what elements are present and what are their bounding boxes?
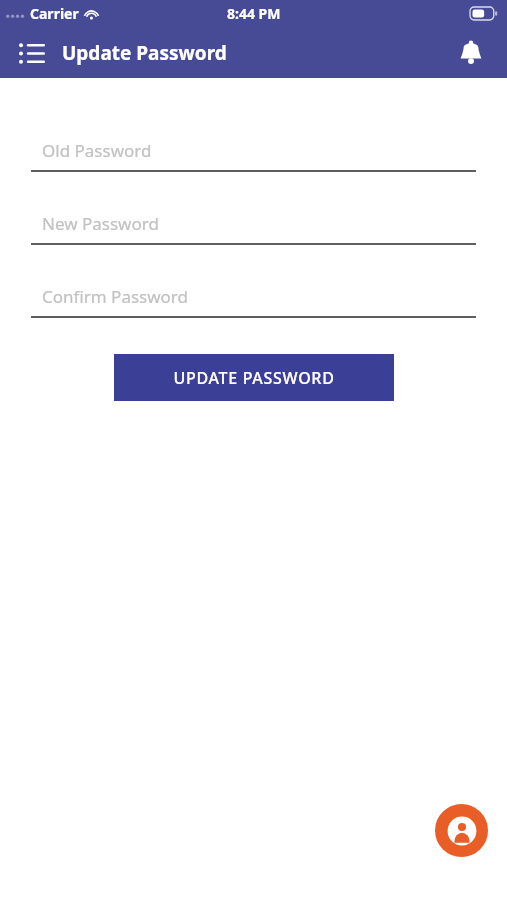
staticText: Confirm Password [42, 285, 188, 308]
button[interactable]: Account [435, 804, 488, 857]
staticText: Old Password [42, 139, 152, 162]
staticText: Update Password [62, 40, 227, 66]
staticText: Carrier [30, 4, 79, 23]
button[interactable]: Menu [12, 33, 52, 73]
button[interactable]: UPDATE PASSWORD [114, 354, 394, 401]
button[interactable]: Notifications [451, 33, 491, 73]
button[interactable]: Old Password [31, 130, 476, 172]
button[interactable]: Confirm Password [31, 276, 476, 318]
button[interactable]: New Password [31, 203, 476, 245]
staticText: UPDATE PASSWORD [173, 367, 335, 389]
staticText: 8:44 PM [227, 4, 281, 23]
staticText: New Password [42, 212, 159, 235]
